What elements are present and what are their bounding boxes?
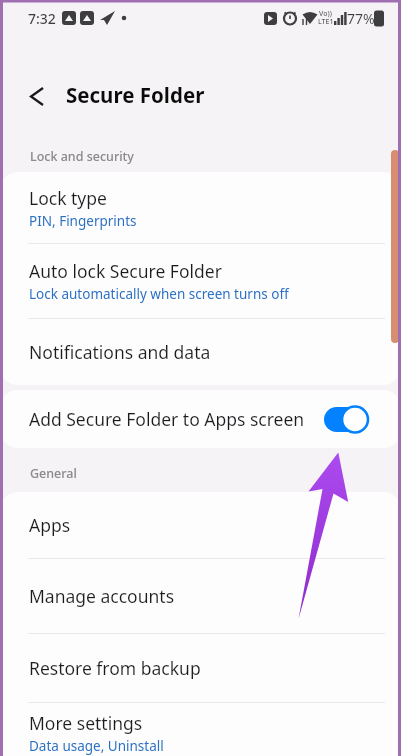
staticText: Add Secure Folder to Apps screen	[29, 407, 305, 431]
staticText: Notifications and data	[29, 340, 211, 364]
staticText: PIN, Fingerprints	[29, 212, 137, 230]
staticText: LTE1	[318, 17, 334, 27]
staticText: 7:32	[28, 9, 56, 28]
staticText: Lock type	[29, 186, 107, 210]
staticText: 77%	[347, 9, 375, 28]
button[interactable]: Restore from backup	[0, 634, 401, 702]
button[interactable]	[20, 78, 56, 114]
button[interactable]: Auto lock Secure Folder	[0, 244, 401, 318]
button[interactable]: Apps	[0, 492, 401, 558]
staticText: General	[30, 465, 77, 482]
button[interactable]: Lock type	[0, 172, 401, 243]
staticText: Auto lock Secure Folder	[29, 259, 222, 283]
staticText: Manage accounts	[29, 584, 175, 608]
button[interactable]: Add Secure Folder to Apps screen	[0, 390, 401, 448]
button[interactable]: More settings	[0, 703, 401, 756]
staticText: Vo))	[319, 9, 332, 19]
staticText: Restore from backup	[29, 656, 201, 680]
staticText: Apps	[29, 513, 71, 537]
button[interactable]: Manage accounts	[0, 559, 401, 633]
button[interactable]: Notifications and data	[0, 319, 401, 385]
staticText: Lock and security	[30, 148, 134, 165]
staticText: Data usage, Uninstall	[29, 737, 164, 755]
staticText: Lock automatically when screen turns off	[29, 285, 289, 303]
staticText: Secure Folder	[66, 81, 205, 109]
staticText: More settings	[29, 711, 143, 735]
